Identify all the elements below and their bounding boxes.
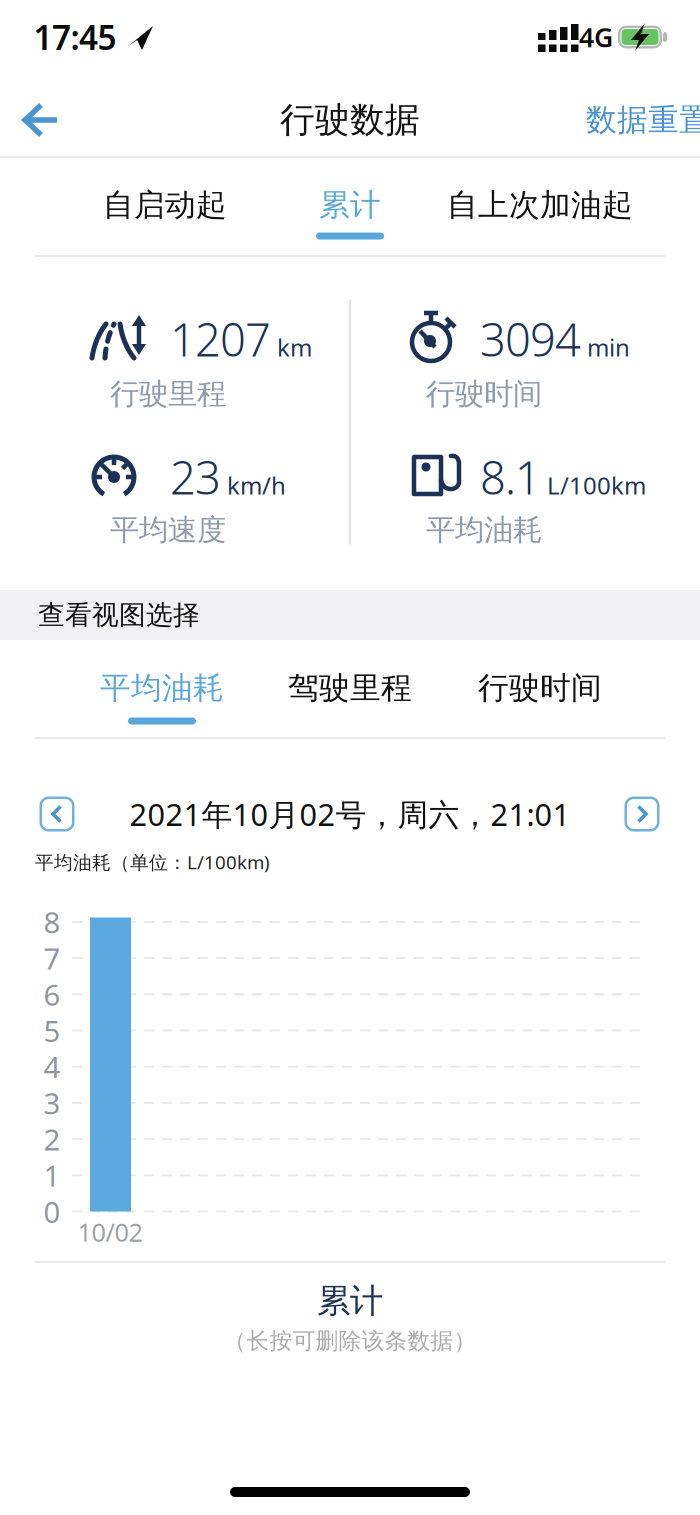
staticText: 2 — [43, 1120, 60, 1159]
staticText: 7 — [43, 939, 60, 978]
staticText: 3 — [43, 1083, 60, 1122]
button[interactable]: 驾驶里程 — [265, 655, 435, 721]
button[interactable]: 10/02 平均油耗 8.1 — [90, 917, 131, 1211]
button[interactable]: Back — [23, 98, 79, 142]
staticText: km — [277, 331, 312, 363]
staticText: 自启动起 — [103, 186, 227, 224]
staticText: 4 — [43, 1047, 60, 1086]
staticText: 5 — [43, 1011, 60, 1050]
staticText: 1 — [43, 1156, 60, 1195]
button[interactable]: 自启动起 — [80, 172, 250, 238]
staticText: 累计 — [317, 1280, 383, 1321]
button[interactable]: 平均油耗 — [77, 655, 247, 721]
staticText: 查看视图选择 — [38, 599, 200, 631]
staticText: 行驶里程 — [110, 376, 226, 412]
staticText: （长按可删除该条数据） — [223, 1327, 476, 1355]
staticText: 平均油耗 — [426, 512, 542, 548]
staticText: 驾驶里程 — [288, 669, 412, 707]
button[interactable]: 自上次加油起 — [435, 172, 645, 238]
staticText: km/h — [227, 469, 286, 501]
staticText: 行驶数据 — [280, 99, 420, 141]
button[interactable]: 数据重置 — [583, 90, 700, 150]
button[interactable]: 累计 — [285, 172, 415, 238]
staticText: 行驶时间 — [426, 376, 542, 412]
staticText: 平均油耗（单位：L/100km) — [35, 850, 270, 874]
staticText: 10/02 — [77, 1215, 142, 1249]
staticText: 平均油耗 — [100, 669, 224, 707]
staticText: 23 — [170, 447, 221, 507]
staticText: 0 — [43, 1192, 60, 1231]
button[interactable]: Previous day — [39, 796, 74, 831]
staticText: 8.1 — [480, 447, 541, 507]
staticText: 数据重置 — [586, 101, 700, 139]
staticText: 平均速度 — [110, 512, 226, 548]
button[interactable]: 行驶时间 — [455, 655, 625, 721]
staticText: 1207 — [170, 309, 271, 369]
button[interactable]: Next day — [624, 796, 659, 831]
staticText: 自上次加油起 — [447, 186, 633, 224]
staticText: 8 — [43, 902, 60, 941]
staticText: 4G — [579, 19, 613, 55]
staticText: 行驶时间 — [478, 669, 602, 707]
staticText: 累计 — [319, 186, 381, 224]
staticText: 2021年10月02号，周六，21:01 — [129, 794, 570, 834]
staticText: 6 — [43, 975, 60, 1014]
staticText: min — [587, 331, 630, 363]
staticText: L/100km — [547, 469, 646, 501]
staticText: 3094 — [480, 309, 581, 369]
staticText: 17:45 — [33, 15, 116, 59]
